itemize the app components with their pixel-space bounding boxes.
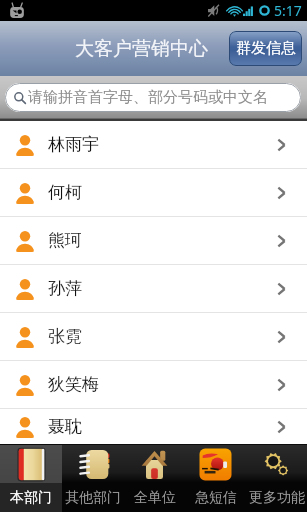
- button[interactable]: 聂耽: [0, 409, 307, 444]
- staticText: 大客户营销中心: [75, 37, 208, 61]
- staticText: 请输拼音首字母、部分号码或中文名: [28, 88, 268, 107]
- button[interactable]: 其他部门: [62, 445, 124, 512]
- button[interactable]: 林雨宇: [0, 121, 307, 168]
- staticText: 聂耽: [48, 416, 82, 437]
- button[interactable]: 张霓: [0, 313, 307, 360]
- button[interactable]: 孙萍: [0, 265, 307, 312]
- staticText: 本部门: [10, 489, 52, 507]
- staticText: 其他部门: [65, 489, 121, 507]
- staticText: 群发信息: [236, 39, 296, 58]
- staticText: 更多功能: [249, 489, 305, 507]
- button[interactable]: 急短信: [185, 445, 246, 512]
- button[interactable]: 本部门: [0, 445, 62, 512]
- staticText: 急短信: [195, 489, 237, 507]
- button[interactable]: 更多功能: [246, 445, 307, 512]
- button[interactable]: 请输拼音首字母、部分号码或中文名: [5, 83, 301, 112]
- button[interactable]: 全单位: [124, 445, 185, 512]
- staticText: 林雨宇: [48, 134, 99, 155]
- staticText: 孙萍: [48, 278, 82, 299]
- staticText: 熊珂: [48, 230, 82, 251]
- button[interactable]: 何柯: [0, 169, 307, 216]
- staticText: 何柯: [48, 182, 82, 203]
- staticText: 张霓: [48, 326, 82, 347]
- button[interactable]: 熊珂: [0, 217, 307, 264]
- staticText: 5:17: [274, 1, 302, 20]
- button[interactable]: 群发信息: [229, 31, 302, 66]
- staticText: 全单位: [134, 489, 176, 507]
- staticText: 狄笑梅: [48, 374, 99, 395]
- button[interactable]: 狄笑梅: [0, 361, 307, 408]
